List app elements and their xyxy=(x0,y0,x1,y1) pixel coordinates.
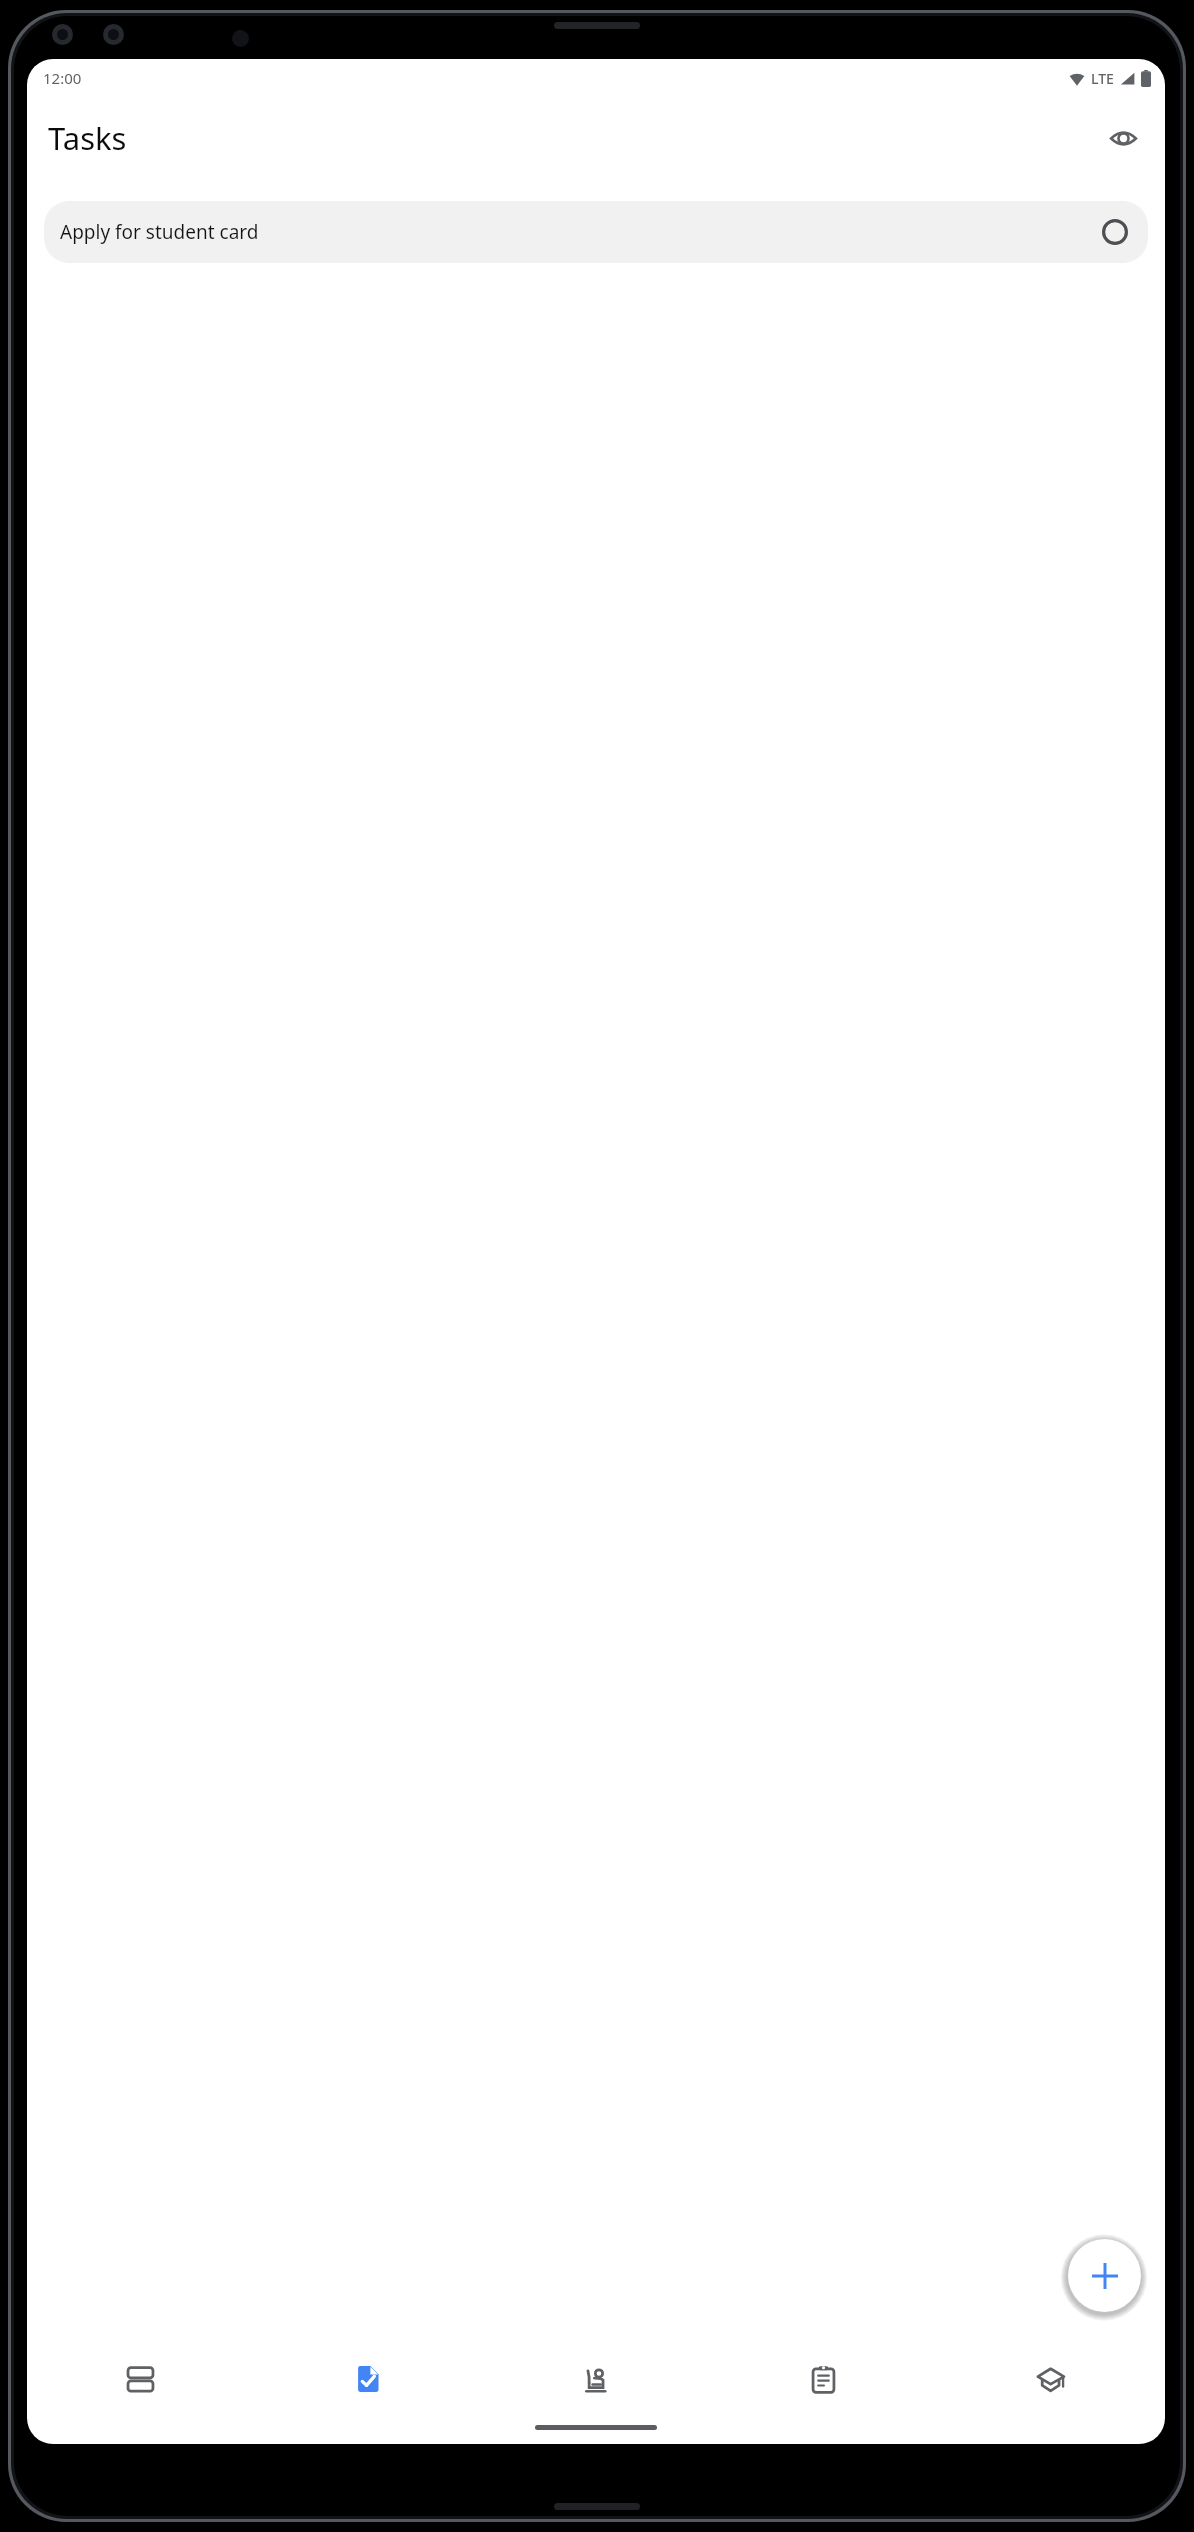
button[interactable]: Add task xyxy=(1068,2239,1141,2312)
button[interactable]: Apply for student card xyxy=(44,201,1148,263)
button[interactable]: Grades xyxy=(937,2340,1165,2418)
button[interactable]: Lessons xyxy=(481,2340,709,2418)
button[interactable]: Toggle completed tasks visibility xyxy=(1099,114,1147,162)
staticText: Tasks xyxy=(48,117,127,159)
button[interactable]: Tasks xyxy=(254,2340,481,2418)
staticText: Apply for student card xyxy=(60,219,259,245)
button[interactable]: Notes xyxy=(709,2340,937,2418)
staticText: LTE xyxy=(1091,69,1114,88)
staticText: 12:00 xyxy=(43,68,82,88)
button[interactable]: Mark task complete xyxy=(1098,215,1132,249)
button[interactable]: Dashboard xyxy=(27,2340,254,2418)
